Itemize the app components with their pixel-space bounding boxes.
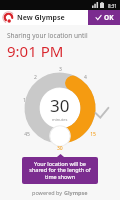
staticText: OK [104, 13, 114, 22]
staticText: 9:01 PM [7, 41, 64, 61]
staticText: 2 [34, 74, 37, 79]
staticText: 3 [59, 66, 62, 71]
staticText: 8:31 [108, 3, 117, 8]
staticText: Sharing your location until [7, 31, 88, 40]
staticText: 45 [24, 131, 30, 136]
staticText: 15 [90, 131, 96, 136]
staticText: New Glympse [17, 13, 65, 23]
staticText: minutes [52, 117, 68, 122]
button[interactable]: Your location will be shared for the len… [22, 157, 98, 184]
staticText: Your location will be shared for the len… [26, 160, 94, 181]
staticText: 1 [23, 97, 26, 102]
staticText: Glympse [64, 189, 88, 196]
staticText: 30 [57, 145, 63, 152]
staticText: powered by [32, 189, 64, 196]
staticText: 30 [50, 94, 70, 117]
button[interactable]: New Glympse [0, 12, 88, 23]
button[interactable]: Duration dial 30 minutes [17, 65, 103, 151]
button[interactable]: OK [88, 10, 120, 25]
staticText: 4 [84, 74, 87, 79]
